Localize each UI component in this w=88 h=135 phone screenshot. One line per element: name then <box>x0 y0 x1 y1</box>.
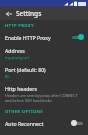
staticText: Auto Reconnect <box>5 120 44 127</box>
staticText: Enable HTTP Proxy <box>5 34 51 41</box>
staticText: Port (default: 80) <box>5 66 46 73</box>
staticText: OTHER OPTIONS <box>5 109 43 115</box>
staticText: Settings <box>16 9 42 18</box>
button[interactable]: Auto Reconnect <box>0 116 88 130</box>
button[interactable]: Address <box>0 44 88 63</box>
button[interactable]: Enable HTTP Proxy <box>0 30 88 44</box>
button[interactable]: Http headers <box>0 82 88 106</box>
staticText: Http headers <box>5 85 37 92</box>
staticText: Headers are sent by proxy after CONNECT … <box>5 93 83 103</box>
staticText: my-proxy.url <box>5 55 29 60</box>
button[interactable]: Back <box>4 9 13 18</box>
staticText: HTTP PROXY <box>5 23 34 29</box>
staticText: 80 <box>5 74 10 79</box>
button[interactable]: Port (default: 80) <box>0 63 88 82</box>
staticText: Address <box>5 47 25 54</box>
